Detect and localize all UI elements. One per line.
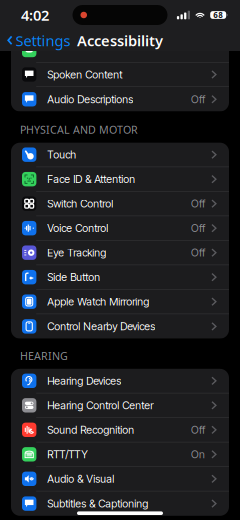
staticText: Apple Watch Mirroring [47,295,149,308]
button[interactable]: Sound Recognition [11,418,229,442]
staticText: Hearing Control Center [47,399,153,412]
staticText: On [191,448,205,461]
button[interactable]: Switch Control [11,192,229,216]
staticText: Touch [47,148,76,161]
staticText: 68 [213,10,223,20]
button[interactable]: Hearing Control Center [11,393,229,418]
staticText: RTT/TTY [47,448,88,461]
button[interactable] [11,38,229,62]
button[interactable]: Audio & Visual [11,467,229,491]
staticText: Hearing Devices [47,374,121,387]
button[interactable]: Spoken Content [11,62,229,87]
staticText: Switch Control [47,197,113,210]
staticText: Face ID & Attention [47,173,135,186]
staticText: Control Nearby Devices [47,320,155,333]
button[interactable]: Control Nearby Devices [11,314,229,339]
staticText: Voice Control [47,222,108,235]
staticText: Subtitles & Captioning [47,497,148,510]
staticText: 4:02 [21,5,49,25]
button[interactable]: Subtitles & Captioning [11,491,229,516]
staticText: Spoken Content [47,68,122,81]
staticText: Side Button [47,271,100,284]
staticText: Off [191,197,205,210]
button[interactable]: RTT/TTY [11,442,229,467]
staticText: PHYSICAL AND MOTOR [20,122,138,137]
button[interactable]: Audio Descriptions [11,87,229,111]
button[interactable]: Hearing Devices [11,369,229,393]
staticText: Sound Recognition [47,423,134,436]
staticText: Settings [15,31,70,50]
staticText: Audio & Visual [47,472,114,485]
button[interactable]: Apple Watch Mirroring [11,290,229,314]
button[interactable]: Eye Tracking [11,241,229,265]
staticText: Off [191,246,205,259]
staticText: Off [191,423,205,436]
button[interactable]: Voice Control [11,216,229,241]
staticText: Audio Descriptions [47,93,133,106]
button[interactable]: Side Button [11,265,229,290]
button[interactable]: Touch [11,143,229,167]
staticText: HEARING [20,349,68,363]
staticText: Off [191,93,205,106]
button[interactable]: Face ID & Attention [11,167,229,192]
staticText: Eye Tracking [47,246,106,259]
staticText: Accessibility [77,31,163,50]
staticText: Off [191,222,205,235]
button[interactable]: Settings [0,31,70,50]
